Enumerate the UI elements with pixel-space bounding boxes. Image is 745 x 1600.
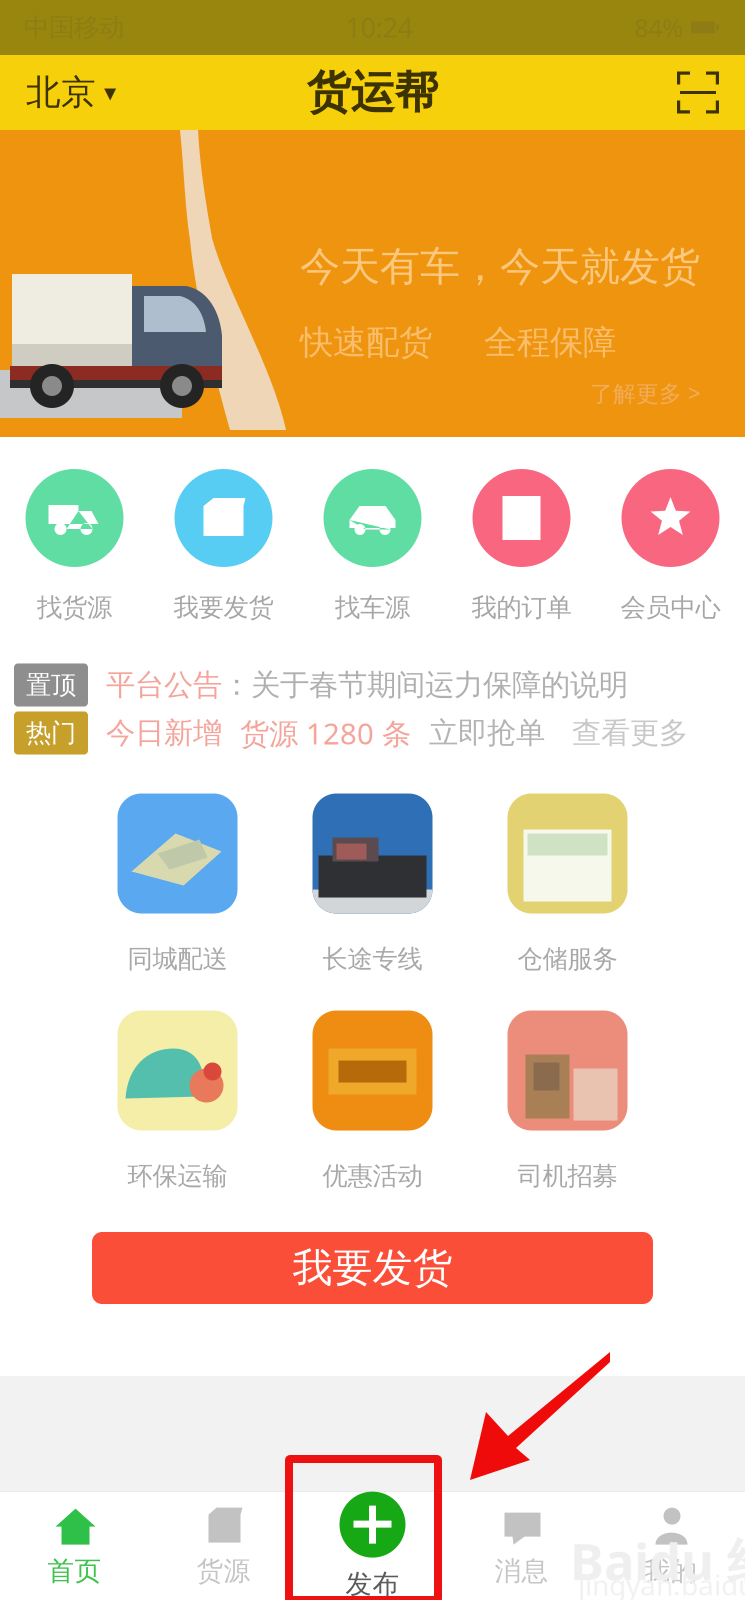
staticText: 优惠活动 — [322, 1160, 422, 1192]
staticText: 中国移动 — [24, 12, 124, 43]
staticText: jingyan.baidu.com — [578, 1566, 745, 1600]
staticText: 仓储服务 — [517, 943, 617, 975]
staticText: 我的 — [643, 1555, 697, 1587]
button[interactable]: 货源 — [149, 1492, 298, 1600]
button[interactable]: 找货源 — [0, 469, 149, 629]
staticText: 今日新增 — [88, 715, 222, 751]
button[interactable]: 我要发货 — [149, 469, 298, 629]
button[interactable]: 环保运输 — [80, 1010, 275, 1227]
staticText: 今天有车，今天就发货 — [300, 242, 700, 291]
button[interactable]: 同城配送 — [80, 793, 275, 1010]
staticText: 首页 — [47, 1555, 101, 1587]
staticText: ▾ — [104, 79, 116, 106]
staticText: 长途专线 — [322, 943, 422, 975]
staticText: 10:24 — [345, 10, 412, 45]
button[interactable]: 发布 — [298, 1492, 447, 1600]
button[interactable]: 今天有车，今天就发货 — [0, 130, 745, 437]
staticText: 货源 1280 条 — [222, 713, 411, 752]
staticText: 了解更多 > — [590, 378, 701, 408]
staticText: 84% — [634, 11, 683, 44]
staticText: 会员中心 — [620, 592, 720, 623]
button[interactable]: 找车源 — [298, 469, 447, 629]
staticText: 我的订单 — [471, 592, 571, 623]
staticText: ：关于春节期间运力保障的说明 — [222, 667, 628, 703]
staticText: 环保运输 — [127, 1160, 227, 1192]
button[interactable]: 我要发货 — [92, 1232, 653, 1304]
button[interactable]: 扫一扫 — [651, 55, 745, 130]
button[interactable]: 热门 — [14, 713, 731, 753]
staticText: 全程保障 — [484, 322, 616, 363]
staticText: 平台公告 — [88, 667, 222, 703]
staticText: 司机招募 — [517, 1160, 617, 1192]
staticText: 找货源 — [37, 592, 112, 623]
button[interactable]: 长途专线 — [275, 793, 470, 1010]
staticText: Baidu 经验 — [570, 1527, 745, 1594]
staticText: 查看更多 — [545, 715, 688, 751]
staticText: 立即抢单 — [411, 715, 545, 751]
staticText: 我要发货 — [173, 592, 273, 623]
staticText: 货源 — [196, 1555, 250, 1587]
staticText: 发布 — [345, 1568, 399, 1600]
staticText: 热门 — [26, 717, 76, 748]
staticText: 快速配货 — [300, 322, 432, 363]
staticText: 置顶 — [26, 669, 76, 700]
staticText: 北京 — [26, 71, 96, 114]
button[interactable]: 北京 — [0, 55, 142, 130]
staticText: 我要发货 — [292, 1243, 452, 1292]
staticText: 货运帮 — [306, 65, 438, 119]
button[interactable]: 首页 — [0, 1492, 149, 1600]
button[interactable]: 仓储服务 — [470, 793, 665, 1010]
button[interactable]: 会员中心 — [596, 469, 745, 629]
staticText: 消息 — [494, 1555, 548, 1587]
button[interactable]: 优惠活动 — [275, 1010, 470, 1227]
button[interactable]: 我的 — [596, 1492, 745, 1600]
button[interactable]: 我的订单 — [447, 469, 596, 629]
staticText: 同城配送 — [127, 943, 227, 975]
button[interactable]: 置顶 — [14, 665, 731, 705]
button[interactable]: 司机招募 — [470, 1010, 665, 1227]
button[interactable]: 消息 — [447, 1492, 596, 1600]
staticText: 找车源 — [335, 592, 410, 623]
